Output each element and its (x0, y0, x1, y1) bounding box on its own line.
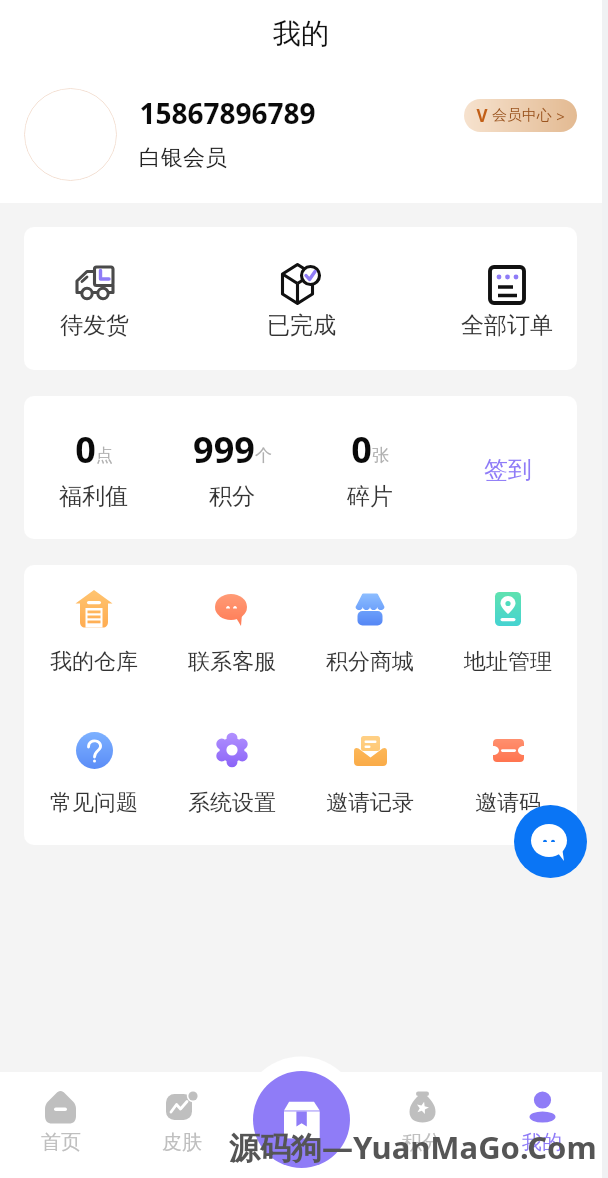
staticText: 系统设置 (188, 789, 276, 817)
staticText: 积分商城 (326, 648, 414, 676)
staticText: > (556, 106, 565, 126)
staticText: 我的 (273, 16, 329, 51)
button[interactable]: 待发货 (44, 257, 144, 340)
button[interactable]: 邀请码 (439, 730, 577, 817)
staticText: 我的 (522, 1130, 562, 1155)
staticText: 全部订单 (461, 311, 553, 340)
staticText: 0 (351, 425, 372, 474)
staticText: 联系客服 (188, 648, 276, 676)
staticText: 会员中心 (492, 106, 552, 125)
staticText: 福利值 (59, 482, 128, 511)
button[interactable]: V (464, 99, 577, 132)
staticText: 个 (255, 445, 272, 466)
button[interactable]: 0 (24, 425, 163, 511)
staticText: 我的仓库 (50, 648, 138, 676)
staticText: 首页 (41, 1130, 81, 1155)
staticText: 签到 (484, 455, 532, 485)
button[interactable]: Avatar (24, 88, 117, 181)
staticText: 皮肤 (162, 1130, 202, 1155)
button[interactable]: Customer service chat (514, 805, 587, 878)
button[interactable]: 皮肤 (121, 1072, 242, 1178)
staticText: 源码狗—YuanMaGo.Com (229, 1126, 597, 1168)
staticText: 常见问题 (50, 789, 138, 817)
staticText: 已完成 (267, 311, 336, 340)
staticText: 碎片 (347, 482, 393, 511)
staticText: 积分 (402, 1130, 442, 1155)
button[interactable]: 积分商城 (301, 589, 439, 676)
staticText: 0 (75, 425, 96, 474)
button[interactable]: 签到 (468, 445, 548, 495)
staticText: 张 (372, 445, 389, 466)
staticText: 白银会员 (139, 144, 227, 172)
button[interactable]: 我的仓库 (24, 589, 163, 676)
staticText: 待发货 (60, 311, 129, 340)
button[interactable]: 地址管理 (439, 589, 577, 676)
button[interactable]: Store (253, 1071, 350, 1168)
button[interactable]: 积分 (362, 1072, 482, 1178)
button[interactable]: 我的 (482, 1072, 602, 1178)
staticText: V (476, 104, 488, 127)
staticText: 点 (96, 445, 113, 466)
button[interactable]: 联系客服 (163, 589, 301, 676)
button[interactable]: 0 (301, 425, 439, 511)
button[interactable]: 首页 (0, 1072, 121, 1178)
staticText: 邀请码 (475, 789, 541, 817)
button[interactable]: 常见问题 (24, 730, 163, 817)
button[interactable]: 999 (163, 425, 301, 511)
button[interactable]: 已完成 (251, 257, 351, 340)
staticText: 地址管理 (464, 648, 552, 676)
button[interactable]: 邀请记录 (301, 730, 439, 817)
staticText: 15867896789 (139, 94, 316, 132)
staticText: 999 (193, 425, 255, 474)
staticText: 邀请记录 (326, 789, 414, 817)
staticText: 积分 (209, 482, 255, 511)
button[interactable]: 全部订单 (457, 257, 557, 340)
button[interactable]: 系统设置 (163, 730, 301, 817)
